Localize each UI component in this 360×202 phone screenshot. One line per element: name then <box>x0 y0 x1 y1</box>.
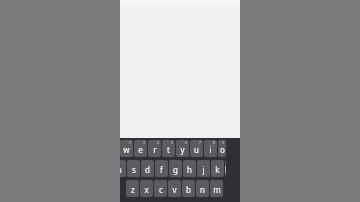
staticText: g <box>173 164 178 175</box>
staticText: u <box>194 144 199 155</box>
button[interactable]: n <box>196 180 209 197</box>
staticText: 8 <box>212 140 215 145</box>
staticText: o <box>220 144 225 155</box>
button[interactable]: v <box>168 180 181 197</box>
staticText: t <box>167 144 170 155</box>
button[interactable]: d <box>141 160 154 177</box>
staticText: 4 <box>156 140 159 145</box>
staticText: 3 <box>142 140 145 145</box>
button[interactable]: a <box>120 160 126 177</box>
staticText: a <box>120 164 122 175</box>
staticText: m <box>213 184 221 195</box>
button[interactable]: 8 <box>204 140 217 157</box>
button[interactable]: 3 <box>134 140 147 157</box>
button[interactable]: 2 <box>120 140 133 157</box>
staticText: d <box>145 164 150 175</box>
staticText: i <box>209 144 212 155</box>
button[interactable]: 4 <box>148 140 161 157</box>
button[interactable]: m <box>210 180 223 197</box>
button[interactable]: k <box>211 160 224 177</box>
staticText: e <box>138 144 143 155</box>
staticText: l <box>225 164 226 175</box>
staticText: j <box>202 164 205 175</box>
button[interactable]: 5 <box>162 140 175 157</box>
staticText: k <box>215 164 220 175</box>
button[interactable]: z <box>126 180 139 197</box>
staticText: s <box>132 164 136 175</box>
staticText: c <box>159 184 163 195</box>
button[interactable]: 9 <box>218 140 226 157</box>
staticText: 6 <box>184 140 187 145</box>
button[interactable]: b <box>182 180 195 197</box>
staticText: 5 <box>170 140 173 145</box>
staticText: y <box>180 144 185 155</box>
button[interactable]: f <box>155 160 168 177</box>
button[interactable]: c <box>154 180 167 197</box>
staticText: b <box>186 184 191 195</box>
button[interactable]: s <box>127 160 140 177</box>
staticText: r <box>153 144 157 155</box>
button[interactable]: x <box>140 180 153 197</box>
staticText: 2 <box>128 140 131 145</box>
staticText: 9 <box>221 140 224 145</box>
staticText: x <box>144 184 149 195</box>
button[interactable]: 6 <box>176 140 189 157</box>
button[interactable]: j <box>197 160 210 177</box>
staticText: n <box>200 184 205 195</box>
staticText: w <box>123 144 130 155</box>
button[interactable]: g <box>169 160 182 177</box>
button[interactable]: 7 <box>190 140 203 157</box>
staticText: 7 <box>198 140 201 145</box>
staticText: z <box>131 184 135 195</box>
button[interactable]: l <box>225 160 226 177</box>
staticText: v <box>172 184 177 195</box>
staticText: h <box>187 164 192 175</box>
button[interactable]: h <box>183 160 196 177</box>
staticText: f <box>160 164 163 175</box>
